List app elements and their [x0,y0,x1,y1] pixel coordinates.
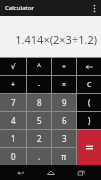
staticText: 1.414×(2×3÷1.2) [15,32,97,47]
staticText: ) [88,115,91,126]
staticText: 8 [37,97,42,108]
staticText: 3 [62,133,67,144]
button[interactable]: 5 [27,112,51,129]
button[interactable]: - [27,76,51,93]
button[interactable]: × [52,76,76,93]
button[interactable]: More options [87,0,101,16]
staticText: 6 [62,115,67,126]
staticText: - [38,80,41,90]
button[interactable]: π [52,148,76,165]
staticText: 4 [11,115,16,126]
staticText: π [61,151,67,162]
button[interactable] [77,58,101,75]
button[interactable]: 6 [52,112,76,129]
staticText: 1 [11,133,16,144]
button[interactable]: 0 [0,148,26,165]
button[interactable]: + [0,76,26,93]
staticText: √ [11,63,16,71]
button[interactable]: 1.414×(2×3÷1.2) [0,16,101,57]
button[interactable] [77,130,101,165]
button[interactable]: Home [40,165,62,180]
button[interactable]: 4 [0,112,26,129]
button[interactable]: ÷ [52,58,76,75]
staticText: 5 [37,115,42,126]
staticText: ( [88,97,91,108]
button[interactable]: 7 [0,94,26,111]
button[interactable]: 8 [27,94,51,111]
staticText: . [38,151,41,162]
button[interactable]: 1 [0,130,26,147]
button[interactable]: ^ [27,58,51,75]
button[interactable]: Back [9,165,31,180]
staticText: + [11,80,16,90]
staticText: 9 [62,97,67,108]
button[interactable]: √ [0,58,26,75]
button[interactable]: 2 [27,130,51,147]
button[interactable]: ( [77,94,101,111]
staticText: ÷ [62,62,67,72]
button[interactable]: 3 [52,130,76,147]
staticText: Calculator [5,4,35,12]
button[interactable]: Recent apps [70,165,92,180]
button[interactable]: C [77,76,101,93]
staticText: ^ [37,62,42,72]
staticText: C [87,80,92,90]
staticText: × [62,80,67,90]
staticText: 7 [11,97,16,108]
staticText: 2 [37,133,42,144]
staticText: 0 [11,151,16,162]
button[interactable]: ) [77,112,101,129]
button[interactable]: 9 [52,94,76,111]
button[interactable]: . [27,148,51,165]
